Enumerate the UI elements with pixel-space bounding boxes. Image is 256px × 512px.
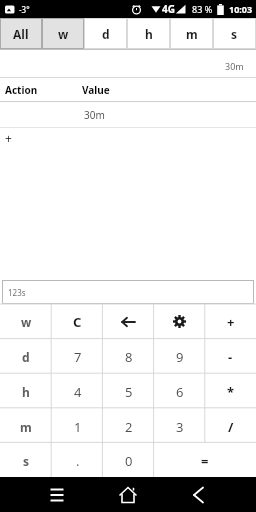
button[interactable]: All [0,18,42,49]
button[interactable]: h [0,374,52,409]
button[interactable]: 4 [52,374,103,409]
staticText: 4 [74,383,82,401]
button[interactable]: 2 [103,409,154,444]
button[interactable]: 8 [103,339,154,374]
staticText: 1 [74,418,82,436]
staticText: s [231,26,238,42]
button[interactable] [44,482,70,508]
staticText: = [201,452,209,470]
button[interactable]: - [205,339,256,374]
staticText: Action [5,83,38,97]
staticText: s [23,453,30,469]
button[interactable]: . [52,444,103,477]
staticText: -3° [19,4,30,15]
staticText: + [227,313,235,331]
staticText: 3 [176,418,184,436]
staticText: 10:03 [229,3,253,15]
button[interactable]: 7 [52,339,103,374]
staticText: 30m [225,60,244,72]
staticText: . [76,452,80,470]
button[interactable]: d [84,18,127,49]
button[interactable] [115,482,141,508]
button[interactable]: * [205,374,256,409]
staticText: m [20,419,32,435]
staticText: h [145,26,153,42]
button[interactable] [185,482,211,508]
button[interactable]: 3 [154,409,205,444]
button[interactable]: w [0,304,52,339]
staticText: d [102,26,110,42]
staticText: Value [82,83,110,97]
staticText: w [58,26,69,42]
staticText: 2 [125,418,133,436]
button[interactable]: 0 [103,444,154,477]
button[interactable]: + [205,304,256,339]
button[interactable]: w [42,18,84,49]
button[interactable]: h [127,18,170,49]
button[interactable]: s [213,18,256,49]
staticText: 4G [162,2,175,16]
button[interactable]: / [205,409,256,444]
button[interactable]: s [0,444,52,477]
button[interactable]: 1 [52,409,103,444]
staticText: w [21,314,32,330]
staticText: d [22,349,30,365]
staticText: 83 % [192,3,213,15]
staticText: - [228,348,233,366]
button[interactable]: C [52,304,103,339]
button[interactable]: 9 [154,339,205,374]
staticText: C [73,313,82,331]
staticText: 30m [84,108,105,122]
button[interactable]: m [170,18,213,49]
staticText: / [228,418,234,436]
button[interactable]: + [5,130,12,146]
staticText: All [13,26,29,42]
staticText: 8 [125,348,133,366]
button[interactable]: 30m [0,102,256,127]
staticText: 7 [74,348,82,366]
button[interactable]: 5 [103,374,154,409]
button[interactable]: m [0,409,52,444]
staticText: 0 [125,452,133,470]
staticText: 6 [176,383,184,401]
staticText: 5 [125,383,133,401]
button[interactable]: 123s [2,280,254,304]
button[interactable]: = [154,444,256,477]
staticText: 123s [8,287,26,298]
button[interactable]: 6 [154,374,205,409]
button[interactable] [154,304,205,339]
staticText: * [227,383,235,401]
staticText: h [22,384,30,400]
button[interactable]: d [0,339,52,374]
staticText: m [186,26,198,42]
button[interactable] [103,304,154,339]
staticText: 9 [176,348,184,366]
